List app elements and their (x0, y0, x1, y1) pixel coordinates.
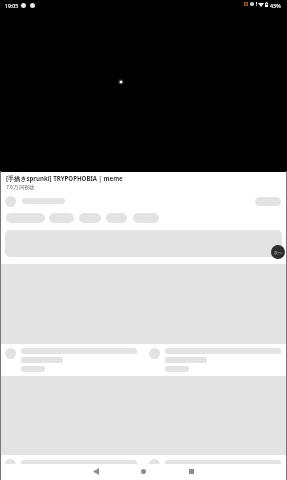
button[interactable]: Back (72, 464, 120, 479)
button[interactable]: Action 5 (133, 213, 159, 223)
button[interactable]: Channel avatar (5, 196, 16, 207)
button[interactable]: Subscribe (255, 197, 281, 206)
button[interactable]: Action 3 (79, 213, 101, 223)
staticText: 次へ (274, 250, 283, 255)
button[interactable]: Recent apps (167, 464, 215, 479)
staticText: [手描きsprunki] TRYPOPHOBIA | meme (6, 174, 123, 182)
staticText: 7.6万 回視聴 (6, 184, 35, 191)
button[interactable]: Action 1 (6, 213, 45, 223)
staticText: 19:05 (5, 2, 19, 9)
button[interactable]: Home (119, 464, 167, 479)
button[interactable]: More options (271, 245, 285, 259)
button[interactable]: Description (5, 230, 282, 257)
button[interactable]: Action 4 (106, 213, 127, 223)
button[interactable]: Action 2 (49, 213, 74, 223)
staticText: 43% (270, 2, 281, 9)
